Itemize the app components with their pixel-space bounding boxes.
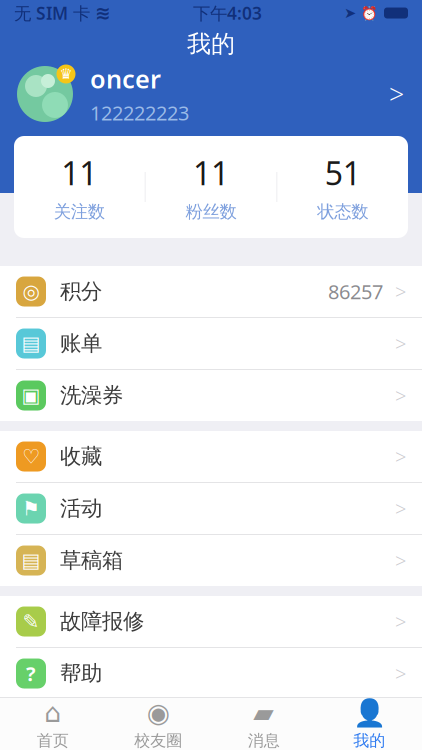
staticText: 51 — [325, 152, 361, 194]
staticText: 故障报修 — [60, 608, 144, 635]
staticText: 账单 — [60, 330, 102, 357]
button[interactable]: ◉ — [105, 698, 211, 750]
button[interactable]: ▤ — [0, 318, 422, 369]
staticText: ✎ — [22, 610, 39, 633]
staticText: ▤ — [21, 332, 40, 355]
staticText: ◎ — [22, 280, 39, 303]
staticText: 11 — [61, 152, 97, 194]
staticText: 11 — [193, 152, 229, 194]
staticText: ▰ — [253, 697, 274, 728]
staticText: > — [395, 608, 406, 635]
staticText: ? — [26, 660, 36, 687]
staticText: 洗澡券 — [60, 382, 123, 409]
staticText: 草稿箱 — [60, 547, 123, 574]
staticText: ▤ — [21, 549, 40, 572]
button[interactable]: 11 — [14, 136, 145, 238]
staticText: 帮助 — [60, 660, 102, 687]
button[interactable]: ◎ — [0, 266, 422, 317]
button[interactable]: ⌂ — [0, 698, 105, 750]
button[interactable]: ♛ — [0, 62, 422, 126]
staticText: oncer — [90, 62, 161, 95]
staticText: ⚑ — [22, 497, 40, 520]
button[interactable]: 51 — [277, 136, 408, 238]
staticText: 86257 — [328, 278, 383, 305]
staticText: 无 SIM 卡 — [14, 1, 90, 24]
staticText: > — [395, 382, 406, 409]
staticText: 122222223 — [90, 99, 189, 126]
button[interactable]: ♡ — [0, 431, 422, 482]
staticText: 收藏 — [60, 443, 102, 470]
staticText: ➤ — [344, 5, 356, 21]
staticText: 关注数 — [54, 201, 105, 222]
button[interactable]: ⚑ — [0, 483, 422, 534]
staticText: 校友圈 — [134, 731, 182, 750]
staticText: > — [395, 278, 406, 305]
staticText: 首页 — [37, 731, 69, 750]
button[interactable]: 👤 — [316, 698, 422, 750]
staticText: > — [395, 330, 406, 357]
staticText: ♛ — [59, 66, 72, 82]
staticText: > — [395, 495, 406, 522]
button[interactable]: ▤ — [0, 535, 422, 586]
staticText: ◉ — [147, 697, 170, 728]
staticText: > — [395, 443, 406, 470]
staticText: ⌂ — [44, 697, 61, 728]
staticText: 我的 — [353, 731, 385, 750]
button[interactable]: ▣ — [0, 370, 422, 421]
staticText: 粉丝数 — [185, 201, 236, 222]
staticText: ≋ — [95, 2, 111, 24]
staticText: ⏰ — [361, 5, 378, 21]
staticText: 状态数 — [317, 201, 368, 222]
button[interactable]: 11 — [146, 136, 276, 238]
staticText: > — [395, 660, 406, 687]
button[interactable]: ? — [0, 648, 422, 699]
staticText: > — [395, 547, 406, 574]
button[interactable]: ✎ — [0, 596, 422, 647]
staticText: 活动 — [60, 495, 102, 522]
staticText: 我的 — [187, 29, 235, 59]
staticText: ♡ — [22, 445, 40, 468]
staticText: ▣ — [21, 384, 40, 407]
staticText: 下午4:03 — [193, 1, 262, 24]
staticText: 👤 — [353, 697, 386, 728]
staticText: 积分 — [60, 278, 102, 305]
button[interactable]: ▰ — [211, 698, 316, 750]
staticText: > — [389, 76, 404, 112]
staticText: 消息 — [248, 731, 280, 750]
